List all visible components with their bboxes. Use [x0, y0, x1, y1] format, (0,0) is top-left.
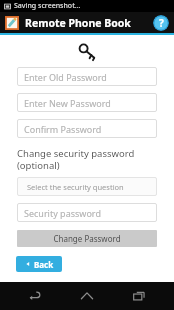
button[interactable]: Back	[18, 282, 52, 310]
button[interactable]: Confirm Password	[17, 119, 157, 138]
staticText: Change security password (optional)	[17, 147, 135, 172]
button[interactable]: Select the security question	[17, 177, 157, 196]
button[interactable]: Security password	[17, 203, 157, 222]
staticText: Back	[34, 259, 54, 270]
staticText: Change Password	[53, 233, 121, 244]
staticText: ?	[159, 16, 164, 30]
staticText: Enter Old Password	[24, 71, 107, 83]
staticText: Saving screenshot...	[14, 1, 81, 11]
button[interactable]: Home	[70, 282, 104, 310]
staticText: Remote Phone Book	[25, 16, 131, 30]
button[interactable]: Change Password	[17, 230, 157, 247]
staticText: Select the security question	[27, 182, 124, 192]
button[interactable]: Recent apps	[122, 282, 156, 310]
button[interactable]: Back	[16, 256, 62, 272]
button[interactable]: Enter New Password	[17, 93, 157, 112]
staticText: Enter New Password	[24, 97, 111, 109]
button[interactable]: Help	[153, 15, 169, 31]
staticText: Confirm Password	[24, 123, 102, 135]
staticText: Security password	[24, 207, 101, 219]
button[interactable]: Enter Old Password	[17, 67, 157, 86]
